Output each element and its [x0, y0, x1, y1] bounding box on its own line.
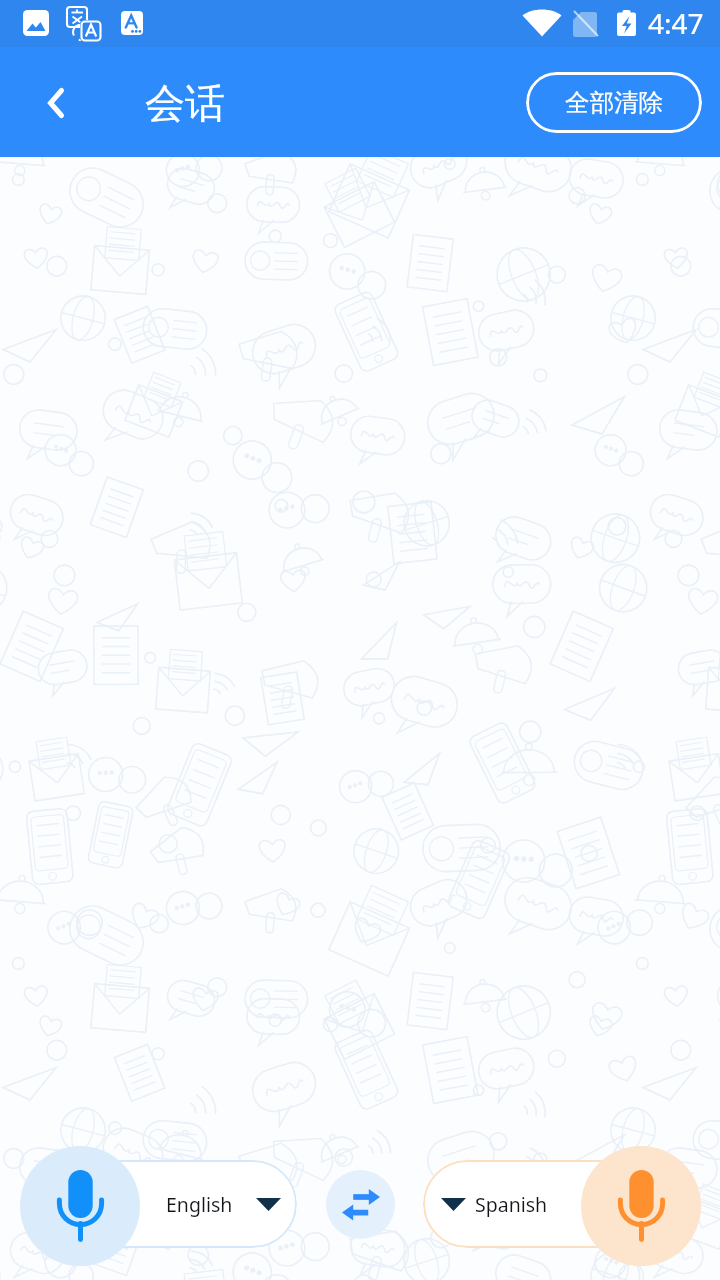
button[interactable]: Swap languages [326, 1170, 395, 1239]
staticText: 会话 [145, 78, 225, 128]
button[interactable]: Back [29, 75, 83, 129]
staticText: 全部清除 [565, 87, 663, 118]
button[interactable]: Speak English [20, 1146, 140, 1266]
staticText: Spanish [475, 1191, 548, 1218]
staticText: 4:47 [648, 4, 704, 42]
button[interactable]: 全部清除 [526, 72, 702, 133]
staticText: English [166, 1191, 233, 1218]
button[interactable]: Spanish [423, 1160, 652, 1248]
button[interactable]: English [68, 1160, 297, 1248]
button[interactable]: Speak Spanish [581, 1146, 701, 1266]
